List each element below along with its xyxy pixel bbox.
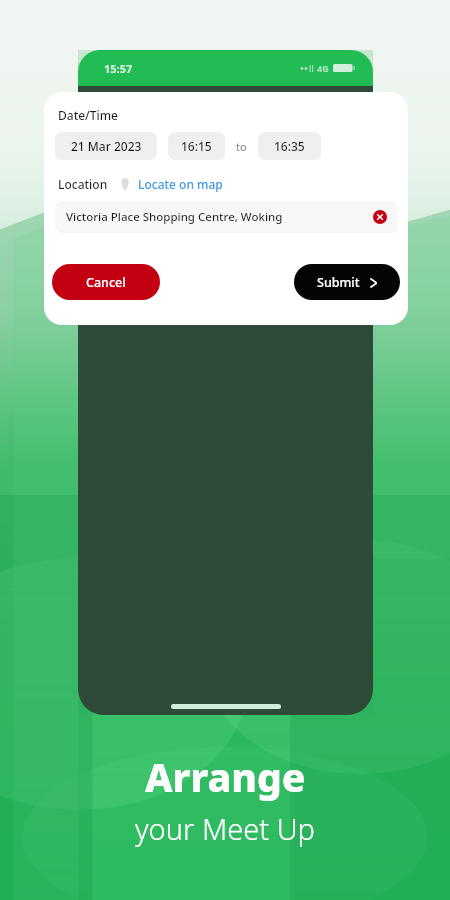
- staticText: 16:35: [274, 138, 305, 154]
- staticText: Locate on map: [138, 176, 223, 192]
- staticText: 15:57: [104, 61, 133, 76]
- staticText: Location: [58, 176, 108, 192]
- button[interactable]: 16:15: [168, 132, 225, 160]
- staticText: Cancel: [86, 274, 126, 291]
- staticText: your Meet Up: [135, 809, 315, 848]
- staticText: Interests: [139, 193, 180, 205]
- staticText: Date/Time: [58, 107, 118, 123]
- staticText: to: [236, 139, 247, 154]
- other: Location pin: [120, 178, 130, 191]
- staticText: Victoria Place Shopping Centre, Woking: [66, 209, 283, 225]
- button[interactable]: 16:35: [258, 132, 321, 160]
- button[interactable]: Locate on map: [138, 176, 223, 192]
- button[interactable]: Victoria Place Shopping Centre, Woking: [55, 201, 397, 233]
- staticText: Bio: [165, 170, 180, 182]
- button[interactable]: 21 Mar 2023: [55, 132, 157, 160]
- staticText: 21 Mar 2023: [71, 138, 142, 154]
- button[interactable]: Cancel: [52, 264, 160, 300]
- staticText: 4G: [317, 62, 329, 74]
- staticText: Arrange: [145, 750, 306, 803]
- button[interactable]: Clear location: [373, 210, 387, 224]
- staticText: Family, Friendship, Weddings, Gym, Weigh…: [188, 193, 348, 241]
- staticText: Occupation: [128, 147, 180, 159]
- button[interactable]: Submit: [294, 264, 400, 300]
- staticText: Woman: [188, 124, 221, 136]
- staticText: Submit: [317, 274, 360, 291]
- staticText: Co: [188, 147, 200, 159]
- staticText: Gender: [147, 124, 180, 136]
- staticText: 16:15: [181, 138, 212, 154]
